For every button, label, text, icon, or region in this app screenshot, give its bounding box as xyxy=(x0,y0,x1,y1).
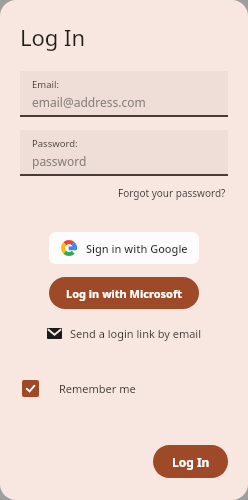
staticText: Remember me xyxy=(59,381,136,396)
button[interactable]: Email: xyxy=(20,71,228,117)
button[interactable]: Log in with Microsoft xyxy=(49,277,199,309)
staticText: Log In xyxy=(172,454,210,470)
button[interactable]: Log In xyxy=(153,445,228,478)
button[interactable]: Remember me xyxy=(22,377,142,400)
staticText: Password: xyxy=(32,137,78,150)
button[interactable]: Google logo xyxy=(49,232,199,264)
staticText: password xyxy=(32,153,87,169)
other: Google logo xyxy=(61,240,77,256)
button[interactable]: Email xyxy=(43,323,206,344)
staticText: Send a login link by email xyxy=(70,326,202,341)
staticText: Log In xyxy=(20,22,86,52)
staticText: email@address.com xyxy=(32,94,146,110)
staticText: Sign in with Google xyxy=(86,241,188,256)
staticText: Log in with Microsoft xyxy=(66,286,182,301)
staticText: Forgot your password? xyxy=(118,186,226,200)
button[interactable]: Password: xyxy=(20,130,228,176)
staticText: Email: xyxy=(32,78,59,91)
other: Email xyxy=(47,328,62,339)
button[interactable]: Forgot your password? xyxy=(116,184,228,202)
